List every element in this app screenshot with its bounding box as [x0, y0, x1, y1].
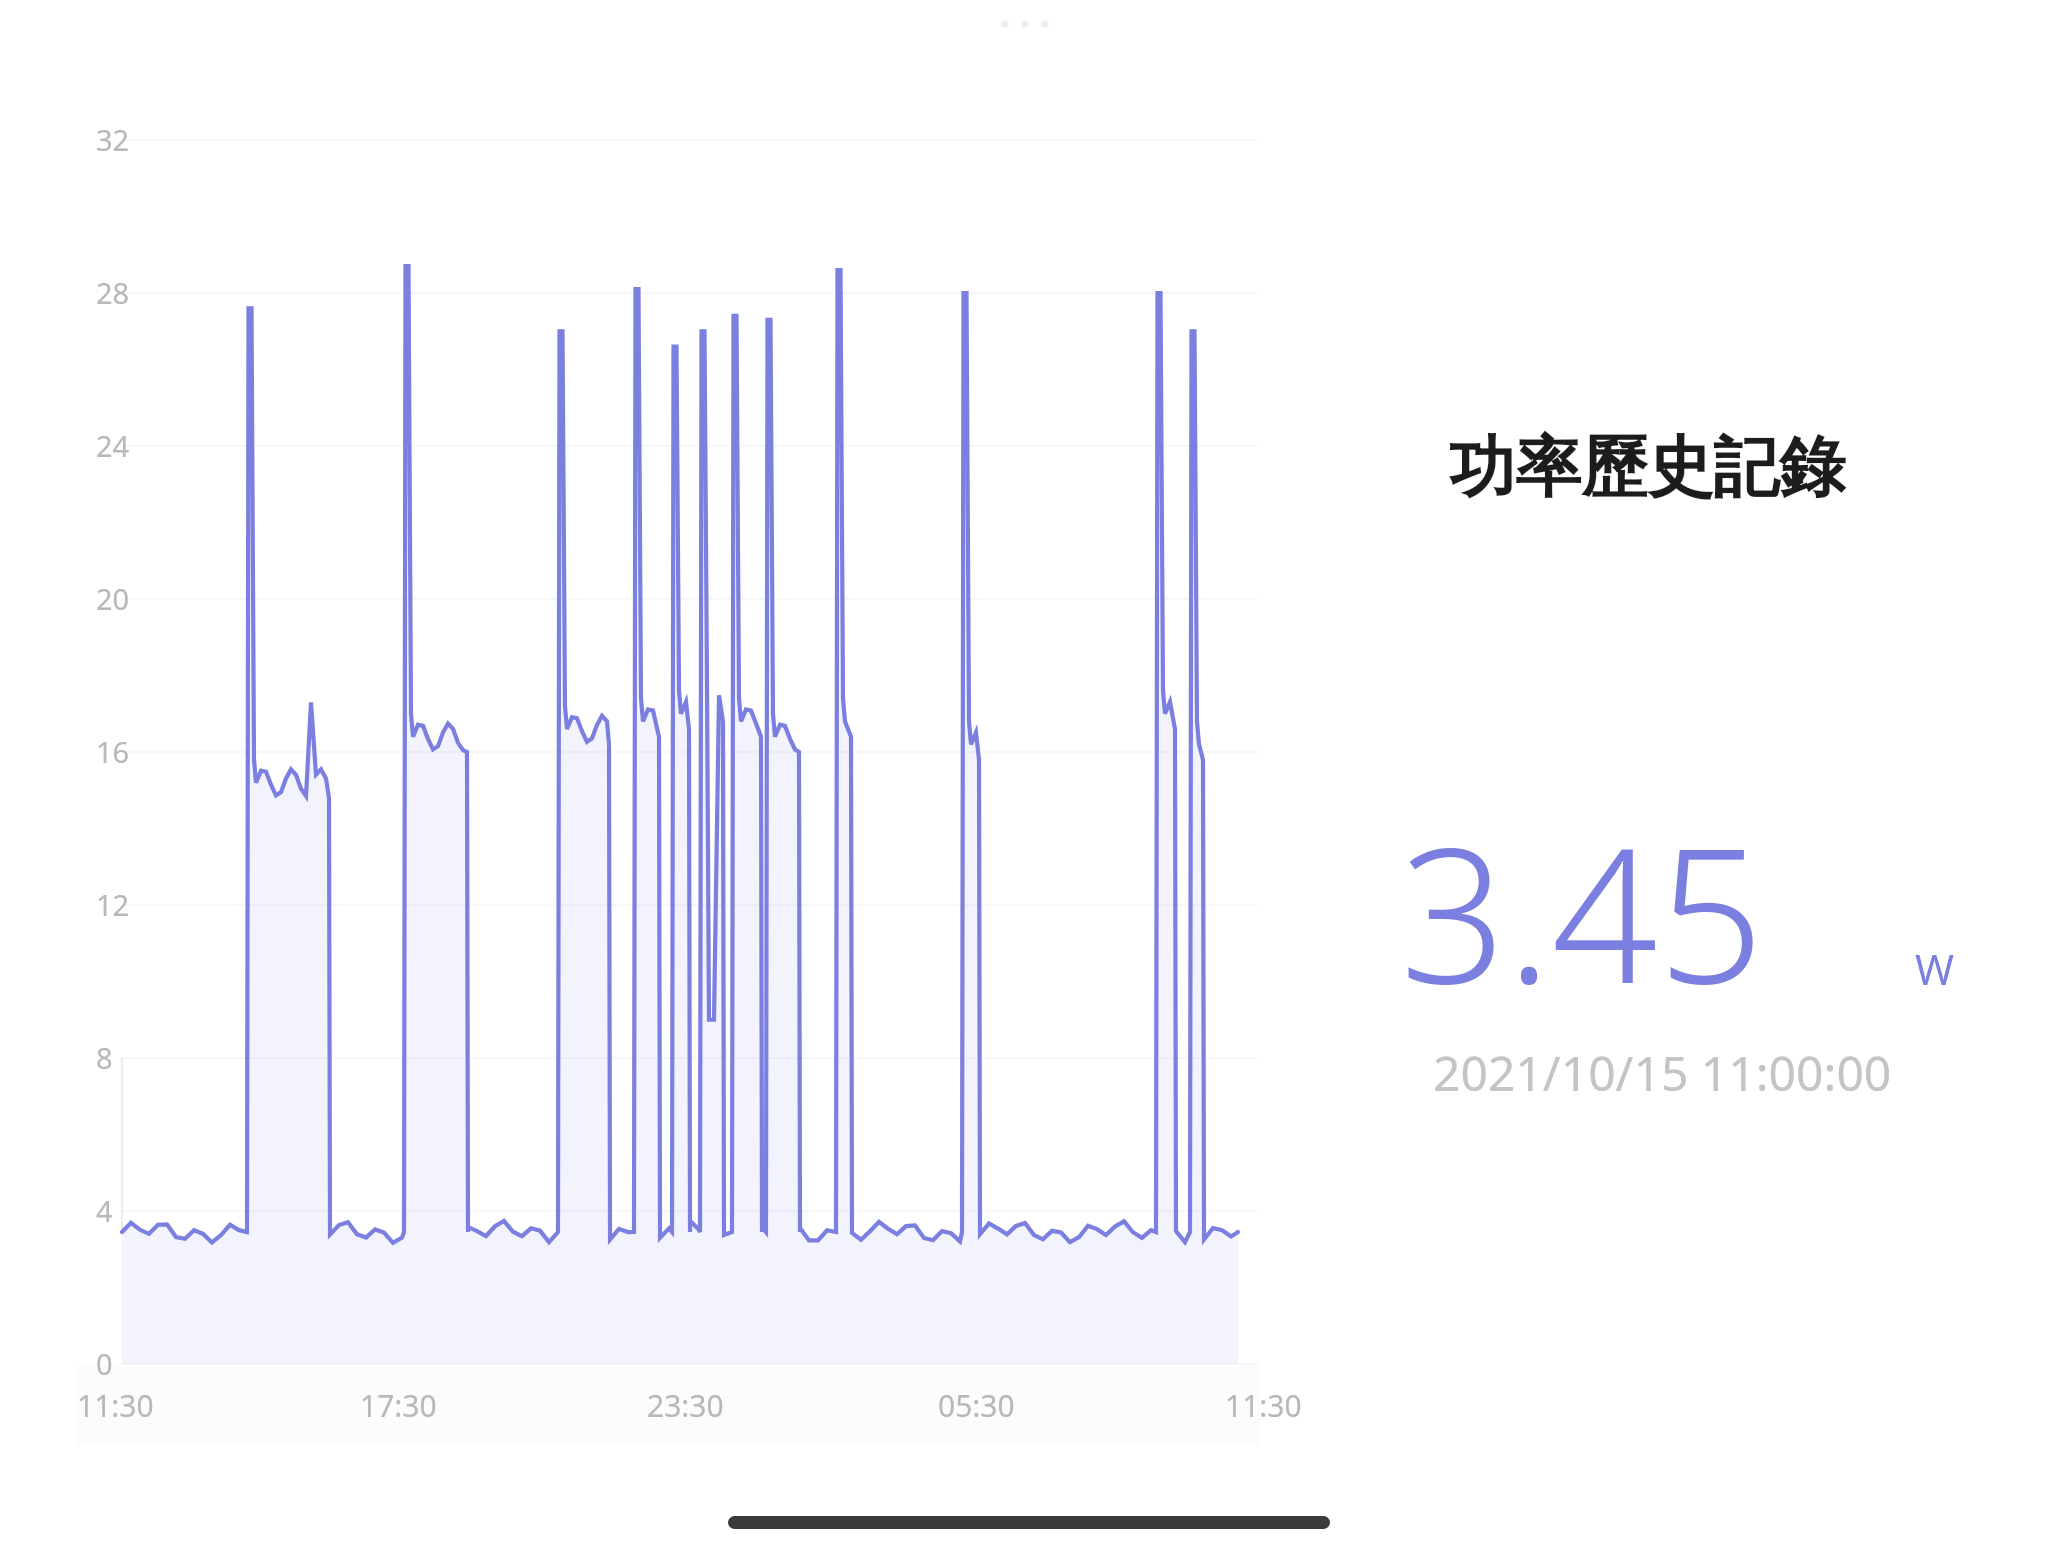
- staticText: 12: [96, 885, 130, 924]
- staticText: 24: [96, 426, 130, 465]
- staticText: 2021/10/15 11:00:00: [1433, 1040, 1892, 1105]
- staticText: 17:30: [360, 1385, 437, 1426]
- staticText: 32: [96, 120, 130, 159]
- button[interactable]: Home: [728, 1516, 1330, 1529]
- staticText: 11:30: [77, 1385, 154, 1426]
- staticText: 23:30: [647, 1385, 724, 1426]
- button[interactable]: 32: [0, 0, 1340, 1460]
- staticText: 3.45: [1400, 784, 1765, 1037]
- staticText: 8: [96, 1038, 113, 1077]
- staticText: 05:30: [938, 1385, 1015, 1426]
- staticText: 11:30: [1225, 1385, 1302, 1426]
- staticText: W: [1915, 940, 1955, 997]
- staticText: 0: [96, 1344, 113, 1383]
- staticText: 16: [96, 732, 130, 771]
- staticText: 28: [96, 273, 130, 312]
- staticText: 功率歷史記錄: [1449, 426, 1845, 509]
- staticText: 4: [96, 1191, 113, 1230]
- staticText: 20: [96, 579, 130, 618]
